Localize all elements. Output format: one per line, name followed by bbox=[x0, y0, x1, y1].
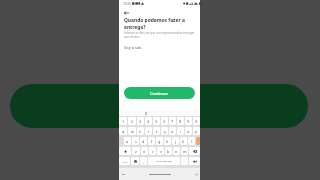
staticText: 7 bbox=[171, 119, 174, 124]
button[interactable]: 5 bbox=[153, 117, 160, 125]
button[interactable]: 8 bbox=[177, 117, 184, 125]
button[interactable]: q bbox=[119, 127, 127, 135]
staticText: l bbox=[191, 139, 192, 144]
staticText: c bbox=[152, 149, 154, 154]
button[interactable]: k bbox=[180, 137, 187, 145]
staticText: n bbox=[175, 149, 178, 154]
staticText: s bbox=[135, 139, 137, 144]
button[interactable]: ?123 bbox=[119, 157, 130, 165]
button[interactable]: 2 bbox=[128, 117, 136, 125]
staticText: . bbox=[184, 159, 185, 164]
staticText: 1 bbox=[122, 119, 125, 124]
button[interactable]: y bbox=[161, 127, 168, 135]
staticText: u bbox=[171, 129, 174, 134]
staticText: Continuar bbox=[150, 91, 169, 96]
staticText: 3 bbox=[139, 119, 142, 124]
button[interactable]: g bbox=[156, 137, 163, 145]
staticText: y bbox=[164, 129, 166, 134]
staticText: 8 bbox=[179, 119, 182, 124]
button[interactable]: h bbox=[164, 137, 171, 145]
button[interactable]: m bbox=[181, 147, 188, 155]
button[interactable]: Back bbox=[122, 9, 130, 17]
button[interactable]: Hide keyboard bbox=[195, 173, 198, 176]
button[interactable]: a bbox=[124, 137, 131, 145]
button[interactable]: . bbox=[181, 157, 188, 165]
staticText: a bbox=[126, 139, 129, 144]
button[interactable]: x bbox=[141, 147, 148, 155]
button[interactable]: 9 bbox=[185, 117, 192, 125]
button[interactable]: c bbox=[149, 147, 156, 155]
button[interactable]: f bbox=[148, 137, 155, 145]
staticText: x bbox=[143, 149, 146, 154]
staticText: z bbox=[135, 149, 137, 154]
button[interactable]: 4 bbox=[145, 117, 152, 125]
button[interactable]: u bbox=[169, 127, 176, 135]
staticText: q bbox=[122, 129, 125, 134]
staticText: p bbox=[195, 129, 198, 134]
button[interactable]: Suggestion bbox=[196, 137, 200, 145]
button[interactable]: Keyboard switcher bbox=[122, 173, 125, 176]
button[interactable]: t bbox=[153, 127, 160, 135]
button[interactable]: r bbox=[145, 127, 152, 135]
staticText: Seg a sab bbox=[124, 45, 142, 50]
button[interactable]: b bbox=[165, 147, 172, 155]
button[interactable]: 0 bbox=[193, 117, 200, 125]
staticText: j bbox=[175, 139, 176, 144]
button[interactable]: Shift bbox=[119, 147, 131, 155]
button[interactable]: Seg a sab bbox=[124, 44, 195, 51]
button[interactable]: , bbox=[140, 157, 147, 165]
staticText: 2 bbox=[131, 119, 134, 124]
staticText: b bbox=[167, 149, 170, 154]
staticText: d bbox=[142, 139, 145, 144]
button[interactable]: i bbox=[177, 127, 184, 135]
staticText: 9 bbox=[187, 119, 190, 124]
staticText: Português (BR) bbox=[156, 160, 173, 163]
staticText: 10:25 bbox=[123, 2, 131, 6]
button[interactable]: p bbox=[193, 127, 200, 135]
button[interactable]: Continuar bbox=[124, 87, 195, 99]
button[interactable]: o bbox=[185, 127, 192, 135]
staticText: w bbox=[131, 129, 134, 134]
staticText: r bbox=[148, 129, 150, 134]
staticText: m bbox=[183, 149, 187, 154]
button[interactable]: z bbox=[132, 147, 140, 155]
staticText: i bbox=[180, 129, 181, 134]
staticText: o bbox=[187, 129, 190, 134]
button[interactable]: j bbox=[172, 137, 179, 145]
button[interactable]: w bbox=[128, 127, 136, 135]
staticText: c bbox=[145, 110, 148, 116]
button[interactable]: e bbox=[137, 127, 144, 135]
button[interactable]: c bbox=[145, 110, 148, 116]
button[interactable]: Enter bbox=[189, 157, 200, 165]
button[interactable]: 1 bbox=[119, 117, 127, 125]
staticText: 5 bbox=[155, 119, 158, 124]
button[interactable]: 7 bbox=[169, 117, 176, 125]
button[interactable]: Português (BR) bbox=[148, 157, 180, 165]
staticText: Quando podemos fazer a entrega? bbox=[124, 17, 198, 30]
button[interactable]: Backspace bbox=[189, 147, 200, 155]
staticText: , bbox=[143, 159, 144, 164]
staticText: g bbox=[158, 139, 161, 144]
staticText: t bbox=[156, 129, 158, 134]
staticText: Informe os dias em que sua empresa reali… bbox=[124, 31, 198, 39]
staticText: v bbox=[160, 149, 162, 154]
button[interactable]: l bbox=[188, 137, 195, 145]
staticText: h bbox=[166, 139, 169, 144]
button[interactable]: n bbox=[173, 147, 180, 155]
staticText: ?123 bbox=[122, 160, 128, 163]
button[interactable]: d bbox=[140, 137, 147, 145]
staticText: k bbox=[182, 139, 185, 144]
button[interactable]: v bbox=[157, 147, 164, 155]
button[interactable]: 3 bbox=[137, 117, 144, 125]
staticText: 4 bbox=[147, 119, 150, 124]
staticText: 0 bbox=[195, 119, 198, 124]
button[interactable]: s bbox=[132, 137, 139, 145]
staticText: 6 bbox=[163, 119, 166, 124]
staticText: f bbox=[151, 139, 153, 144]
staticText: e bbox=[139, 129, 142, 134]
button[interactable]: 6 bbox=[161, 117, 168, 125]
button[interactable]: Emoji bbox=[131, 157, 139, 165]
